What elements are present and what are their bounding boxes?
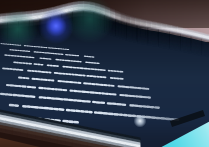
button[interactable]: Code editor on a phone screen (0, 0, 209, 147)
